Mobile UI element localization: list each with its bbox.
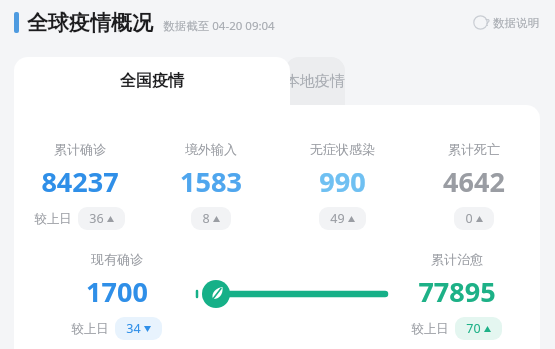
staticText: 36 [89,210,104,227]
staticText: 70 [466,320,481,337]
staticText: 全国疫情 [120,71,184,91]
button[interactable]: 本地疫情 [285,57,345,105]
staticText: 34 [126,320,141,337]
staticText: 全球疫情概况 [27,10,153,36]
button[interactable]: 累计死亡 [408,141,540,230]
staticText: 累计治愈 [431,251,483,267]
staticText: 较上日 [71,321,109,337]
staticText: 累计死亡 [448,141,500,157]
staticText: 无症状感染 [310,141,375,157]
staticText: 累计确诊 [54,141,106,157]
staticText: 0 [465,210,473,227]
staticText: 49 [330,210,345,227]
button[interactable]: 数据说明 [471,11,541,34]
staticText: ? [485,16,490,29]
staticText: 现有确诊 [91,251,143,267]
staticText: 数据截至 04-20 09:04 [163,18,275,34]
staticText: 数据说明 [493,16,539,30]
staticText: 8 [202,210,210,227]
button[interactable]: 全国疫情 [14,57,290,105]
button[interactable]: 累计确诊 [14,141,145,230]
staticText: 境外输入 [185,141,237,157]
staticText: 4642 [443,163,505,200]
other: 数据说明 [473,15,488,30]
staticText: 990 [319,163,366,200]
staticText: 本地疫情 [285,72,345,91]
staticText: 较上日 [411,321,449,337]
staticText: 较上日 [34,211,72,227]
staticText: 77895 [418,273,496,310]
staticText: 1700 [86,273,148,310]
button[interactable]: 境外输入 [145,141,276,230]
staticText: 84237 [41,163,119,200]
staticText: 1583 [180,163,242,200]
button[interactable]: 无症状感染 [276,141,408,230]
